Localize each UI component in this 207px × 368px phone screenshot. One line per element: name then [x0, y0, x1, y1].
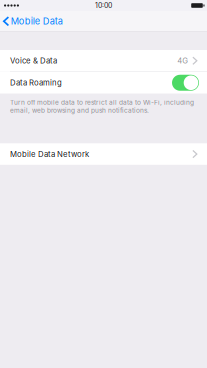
button[interactable]: Mobile Data Network [0, 143, 207, 165]
staticText: Mobile Data [11, 16, 63, 27]
staticText: 10:00 [95, 1, 112, 10]
staticText: Mobile Data Network [10, 149, 89, 159]
button[interactable]: Voice & Data [0, 50, 207, 71]
button[interactable]: Data Roaming [172, 75, 199, 91]
staticText: Data Roaming [10, 78, 62, 87]
staticText: 4G [177, 56, 188, 65]
button[interactable]: Mobile Data [0, 14, 63, 29]
staticText: Turn off mobile data to restrict all dat… [10, 98, 194, 114]
staticText: Voice & Data [10, 56, 57, 65]
